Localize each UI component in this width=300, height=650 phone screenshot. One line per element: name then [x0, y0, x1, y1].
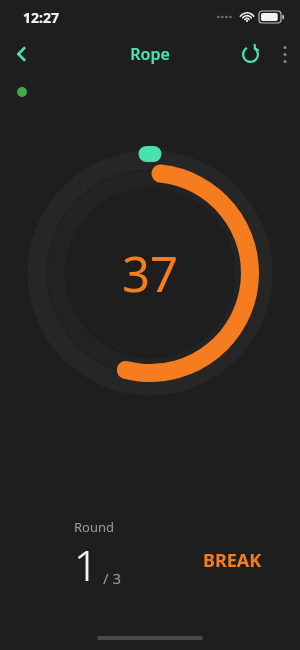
- button[interactable]: Back: [0, 34, 44, 74]
- button[interactable]: Restart: [230, 34, 270, 74]
- staticText: 1: [74, 536, 98, 593]
- staticText: Rope: [130, 43, 170, 65]
- staticText: Round: [74, 518, 115, 536]
- button[interactable]: More options: [270, 34, 300, 74]
- staticText: / 3: [103, 568, 122, 588]
- staticText: 37: [122, 240, 179, 307]
- staticText: 12:27: [23, 8, 59, 27]
- staticText: BREAK: [203, 548, 262, 573]
